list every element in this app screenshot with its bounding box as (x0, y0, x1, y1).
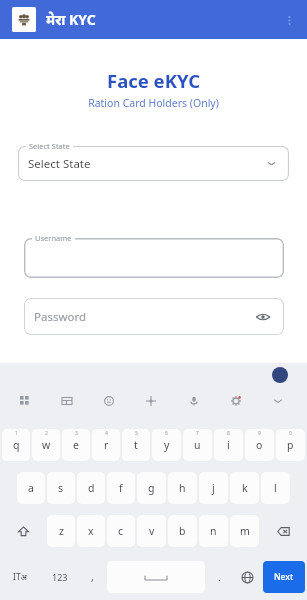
staticText: 6 (165, 430, 168, 437)
staticText: i (227, 438, 230, 452)
button[interactable]: m (230, 515, 259, 547)
button[interactable]: . (207, 561, 232, 593)
staticText: t (134, 438, 138, 452)
staticText: u (194, 438, 201, 452)
button[interactable]: More (270, 394, 286, 408)
staticText: g (148, 481, 155, 495)
button[interactable]: o (245, 429, 274, 461)
staticText: 8 (227, 430, 230, 437)
button[interactable]: x (77, 515, 105, 547)
button[interactable]: Backspace (261, 515, 305, 547)
staticText: Username (35, 233, 72, 243)
button[interactable]: w (32, 429, 60, 461)
button[interactable]: , (80, 561, 105, 593)
button[interactable]: i (214, 429, 243, 461)
staticText: e (73, 438, 79, 452)
button[interactable]: q (2, 429, 30, 461)
staticText: q (13, 438, 20, 452)
staticText: ITअ (13, 571, 28, 583)
staticText: Ration Card Holders (Only) (0, 96, 307, 110)
button[interactable]: a (17, 472, 45, 504)
staticText: b (179, 524, 186, 538)
staticText: Face eKYC (0, 68, 307, 93)
button[interactable]: u (183, 429, 212, 461)
button[interactable]: b (168, 515, 197, 547)
button[interactable]: e (62, 429, 90, 461)
button[interactable]: l (261, 472, 290, 504)
staticText: o (256, 438, 263, 452)
button[interactable]: c (107, 515, 135, 547)
staticText: n (210, 524, 217, 538)
button[interactable]: Keyboard handle (272, 367, 288, 383)
staticText: m (240, 524, 250, 538)
button[interactable]: More options (277, 8, 301, 32)
staticText: a (28, 481, 34, 495)
staticText: p (287, 438, 294, 452)
button[interactable]: p (276, 429, 305, 461)
button[interactable]: h (168, 472, 197, 504)
button[interactable]: Space (107, 561, 205, 593)
staticText: k (242, 481, 248, 495)
staticText: , (91, 570, 94, 584)
staticText: c (118, 524, 124, 538)
button[interactable]: g (137, 472, 166, 504)
staticText: . (218, 570, 221, 584)
staticText: 2 (45, 430, 48, 437)
staticText: z (59, 524, 64, 538)
button[interactable]: Select State (18, 146, 289, 181)
staticText: Select State (28, 156, 91, 172)
button[interactable]: j (199, 472, 228, 504)
button[interactable]: y (152, 429, 181, 461)
staticText: मेरा KYC (46, 10, 96, 29)
staticText: d (88, 481, 95, 495)
button[interactable]: t (122, 429, 150, 461)
button[interactable]: Settings (228, 394, 244, 408)
button[interactable]: Shift (2, 515, 45, 547)
staticText: 123 (52, 571, 68, 583)
button[interactable]: z (47, 515, 75, 547)
staticText: Select State (29, 141, 70, 151)
staticText: 0 (289, 430, 292, 437)
staticText: w (42, 438, 51, 452)
staticText: Next (274, 571, 294, 583)
button[interactable]: Sticker (59, 394, 75, 408)
staticText: 7 (196, 430, 199, 437)
staticText: 3 (75, 430, 78, 437)
button[interactable]: s (47, 472, 75, 504)
staticText: j (212, 481, 215, 495)
staticText: 5 (135, 430, 138, 437)
staticText: f (119, 481, 123, 495)
staticText: r (104, 438, 109, 452)
staticText: 1 (15, 430, 18, 437)
button[interactable]: 123 (41, 561, 78, 593)
button[interactable]: k (230, 472, 259, 504)
button[interactable]: v (137, 515, 166, 547)
staticText: l (274, 481, 277, 495)
button[interactable]: f (107, 472, 135, 504)
staticText: s (58, 481, 64, 495)
button[interactable]: r (92, 429, 120, 461)
button[interactable] (24, 238, 284, 278)
staticText: 9 (258, 430, 261, 437)
staticText: y (164, 438, 170, 452)
button[interactable]: ITअ (2, 561, 39, 593)
button[interactable]: Password (24, 298, 284, 335)
button[interactable]: Apps (17, 394, 33, 408)
staticText: x (88, 524, 94, 538)
button[interactable]: Language (234, 561, 261, 593)
button[interactable]: d (77, 472, 105, 504)
button[interactable]: Emoji (101, 394, 117, 408)
button[interactable]: Next (263, 561, 305, 593)
staticText: Password (34, 309, 87, 325)
button[interactable]: Microphone (186, 394, 202, 408)
button[interactable]: Translate (143, 394, 159, 408)
button[interactable]: n (199, 515, 228, 547)
staticText: 4 (105, 430, 108, 437)
staticText: v (149, 524, 155, 538)
staticText: h (179, 481, 186, 495)
